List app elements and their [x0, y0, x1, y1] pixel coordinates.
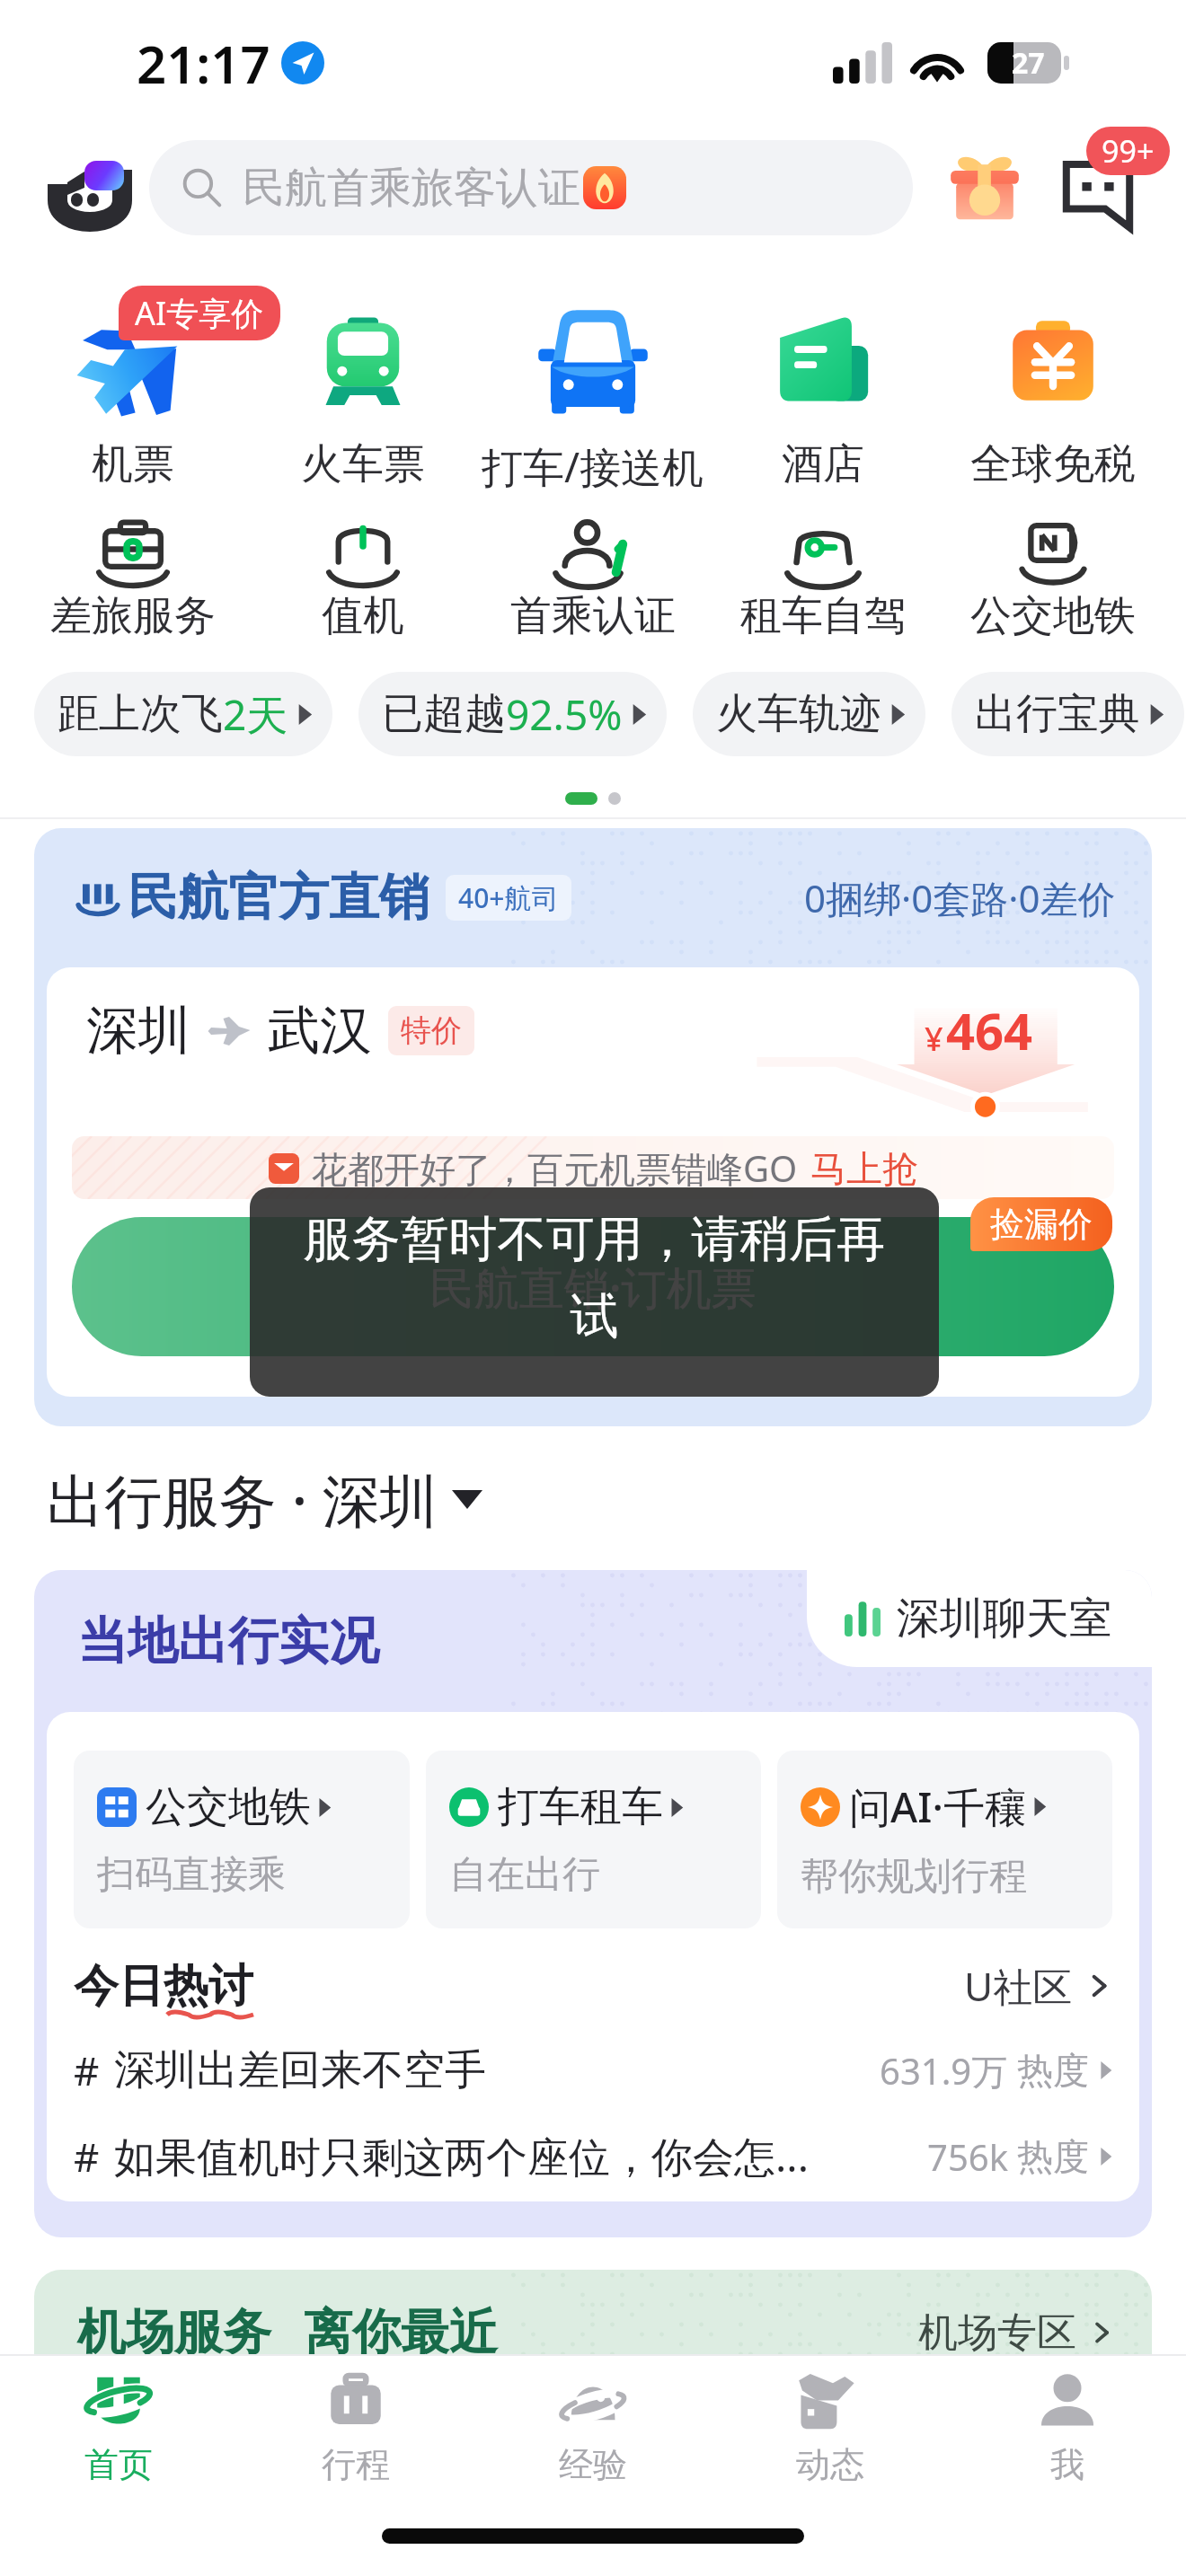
staticText: 帮你规划行程 — [801, 1853, 1027, 1901]
staticText: 0捆绑·0套路·0差价 — [804, 872, 1116, 923]
staticText: 离你最近 — [304, 2302, 498, 2363]
staticText: 热度 — [1017, 2134, 1089, 2179]
staticText: 租车自驾 — [740, 590, 906, 642]
button[interactable]: 首乘认证 — [478, 521, 708, 642]
button[interactable]: 经验 — [474, 2366, 712, 2486]
button[interactable]: 行程 — [237, 2366, 474, 2486]
button[interactable]: 今日热讨 — [74, 1928, 1112, 2043]
button[interactable]: 火车轨迹 — [693, 672, 925, 756]
staticText: 首页 — [84, 2443, 153, 2486]
staticText: # — [74, 2043, 100, 2097]
staticText: 动态 — [796, 2443, 864, 2486]
button[interactable]: 差旅服务 — [18, 521, 248, 642]
staticText: 机场服务 — [77, 2302, 271, 2363]
staticText: 机票 — [92, 438, 174, 490]
staticText: 出行宝典 — [975, 688, 1140, 740]
button[interactable]: 已超越 — [358, 672, 667, 756]
staticText: 756k — [927, 2132, 1008, 2181]
staticText: 花都开好了，百元机票错峰GO — [312, 1143, 798, 1193]
staticText: 今日热讨 — [74, 1958, 253, 2015]
button[interactable]: # — [74, 2128, 1112, 2184]
button[interactable]: Gifts — [938, 141, 1031, 234]
staticText: 631.9万 — [880, 2046, 1008, 2095]
staticText: 2天 — [223, 686, 288, 743]
button[interactable]: 机场服务 — [34, 2270, 1152, 2503]
button[interactable]: 打车租车 — [426, 1751, 761, 1928]
button[interactable]: 火车票 — [248, 305, 478, 490]
staticText: 如果值机时只剩这两个座位，你会怎... — [114, 2128, 809, 2184]
staticText: 全球免税 — [970, 438, 1136, 490]
staticText: 464 — [946, 996, 1033, 1064]
staticText: 当地出行实况 — [77, 1610, 379, 1673]
staticText: 公交地铁 — [970, 590, 1136, 642]
staticText: 我 — [1050, 2443, 1084, 2486]
staticText: 21:17 — [137, 28, 270, 99]
button[interactable]: 酒店 — [708, 305, 938, 490]
button[interactable]: 租车自驾 — [708, 521, 938, 642]
staticText: AI专享价 — [135, 291, 264, 335]
staticText: 深圳聊天室 — [897, 1592, 1112, 1645]
button[interactable]: 出行宝典 — [951, 672, 1184, 756]
staticText: 火车轨迹 — [716, 688, 881, 740]
staticText: 27 — [1012, 43, 1045, 83]
staticText: 民航直销·订机票 — [429, 1257, 757, 1318]
staticText: 火车票 — [301, 438, 425, 490]
staticText: 热度 — [1017, 2048, 1089, 2093]
staticText: 出行服务 · 深圳 — [47, 1460, 438, 1539]
staticText: # — [74, 2130, 100, 2183]
staticText: 行程 — [322, 2443, 390, 2486]
staticText: 民航首乘旅客认证 — [243, 162, 580, 215]
staticText: 打车租车 — [498, 1781, 663, 1833]
staticText: 深圳出差回来不空手 — [114, 2044, 486, 2096]
staticText: 92.5% — [506, 686, 623, 743]
button[interactable]: 深圳聊天室 — [807, 1570, 1152, 1667]
staticText: 机场专区 — [918, 2308, 1076, 2358]
staticText: 酒店 — [782, 438, 864, 490]
button[interactable]: AI专享价 — [18, 305, 248, 490]
button[interactable]: 民航首乘旅客认证 — [149, 140, 913, 235]
staticText: U社区 — [964, 1959, 1073, 2013]
button[interactable]: 公交地铁 — [938, 521, 1168, 642]
staticText: 扫码直接乘 — [97, 1851, 286, 1899]
staticText: 99+ — [1102, 130, 1155, 172]
button[interactable]: 打车/接送机 — [478, 305, 708, 495]
staticText: 首乘认证 — [510, 590, 676, 642]
button[interactable]: 全球免税 — [938, 305, 1168, 490]
button[interactable]: 民航直销·订机票 — [72, 1217, 1114, 1356]
staticText: 差旅服务 — [50, 590, 216, 642]
staticText: 经验 — [559, 2443, 627, 2486]
staticText: 已超越 — [382, 688, 506, 740]
staticText: 自在出行 — [449, 1851, 600, 1899]
staticText: ¥ — [925, 1017, 943, 1061]
button[interactable]: 问AI·千穰 — [777, 1751, 1112, 1928]
button[interactable]: 公交地铁 — [74, 1751, 410, 1928]
staticText: 服务暂时不可用，请稍后再试 — [300, 1209, 889, 1347]
button[interactable]: Messages — [1046, 136, 1150, 240]
button[interactable]: 出行服务 · 深圳 — [47, 1454, 1186, 1544]
staticText: 距上次飞 — [58, 688, 223, 740]
staticText: 公交地铁 — [146, 1781, 311, 1833]
staticText: 40+航司 — [458, 879, 559, 916]
button[interactable]: 首页 — [0, 2366, 237, 2486]
button[interactable]: 距上次飞 — [34, 672, 332, 756]
button[interactable]: 民航官方直销 — [34, 828, 1152, 1426]
staticText: 打车/接送机 — [482, 438, 704, 495]
button[interactable]: 我 — [949, 2366, 1186, 2486]
button[interactable]: 值机 — [248, 521, 478, 642]
staticText: 捡漏价 — [990, 1203, 1093, 1246]
staticText: 问AI·千穰 — [849, 1778, 1026, 1835]
staticText: 马上抢 — [810, 1146, 918, 1191]
staticText: 值机 — [322, 590, 404, 642]
staticText: 武汉 — [268, 998, 372, 1063]
button[interactable]: # — [74, 2043, 1112, 2097]
staticText: 特价 — [401, 1011, 462, 1050]
button[interactable]: App logo — [43, 141, 137, 234]
staticText: 深圳 — [86, 998, 190, 1063]
button[interactable]: 动态 — [712, 2366, 949, 2486]
staticText: 民航官方直销 — [128, 866, 429, 930]
